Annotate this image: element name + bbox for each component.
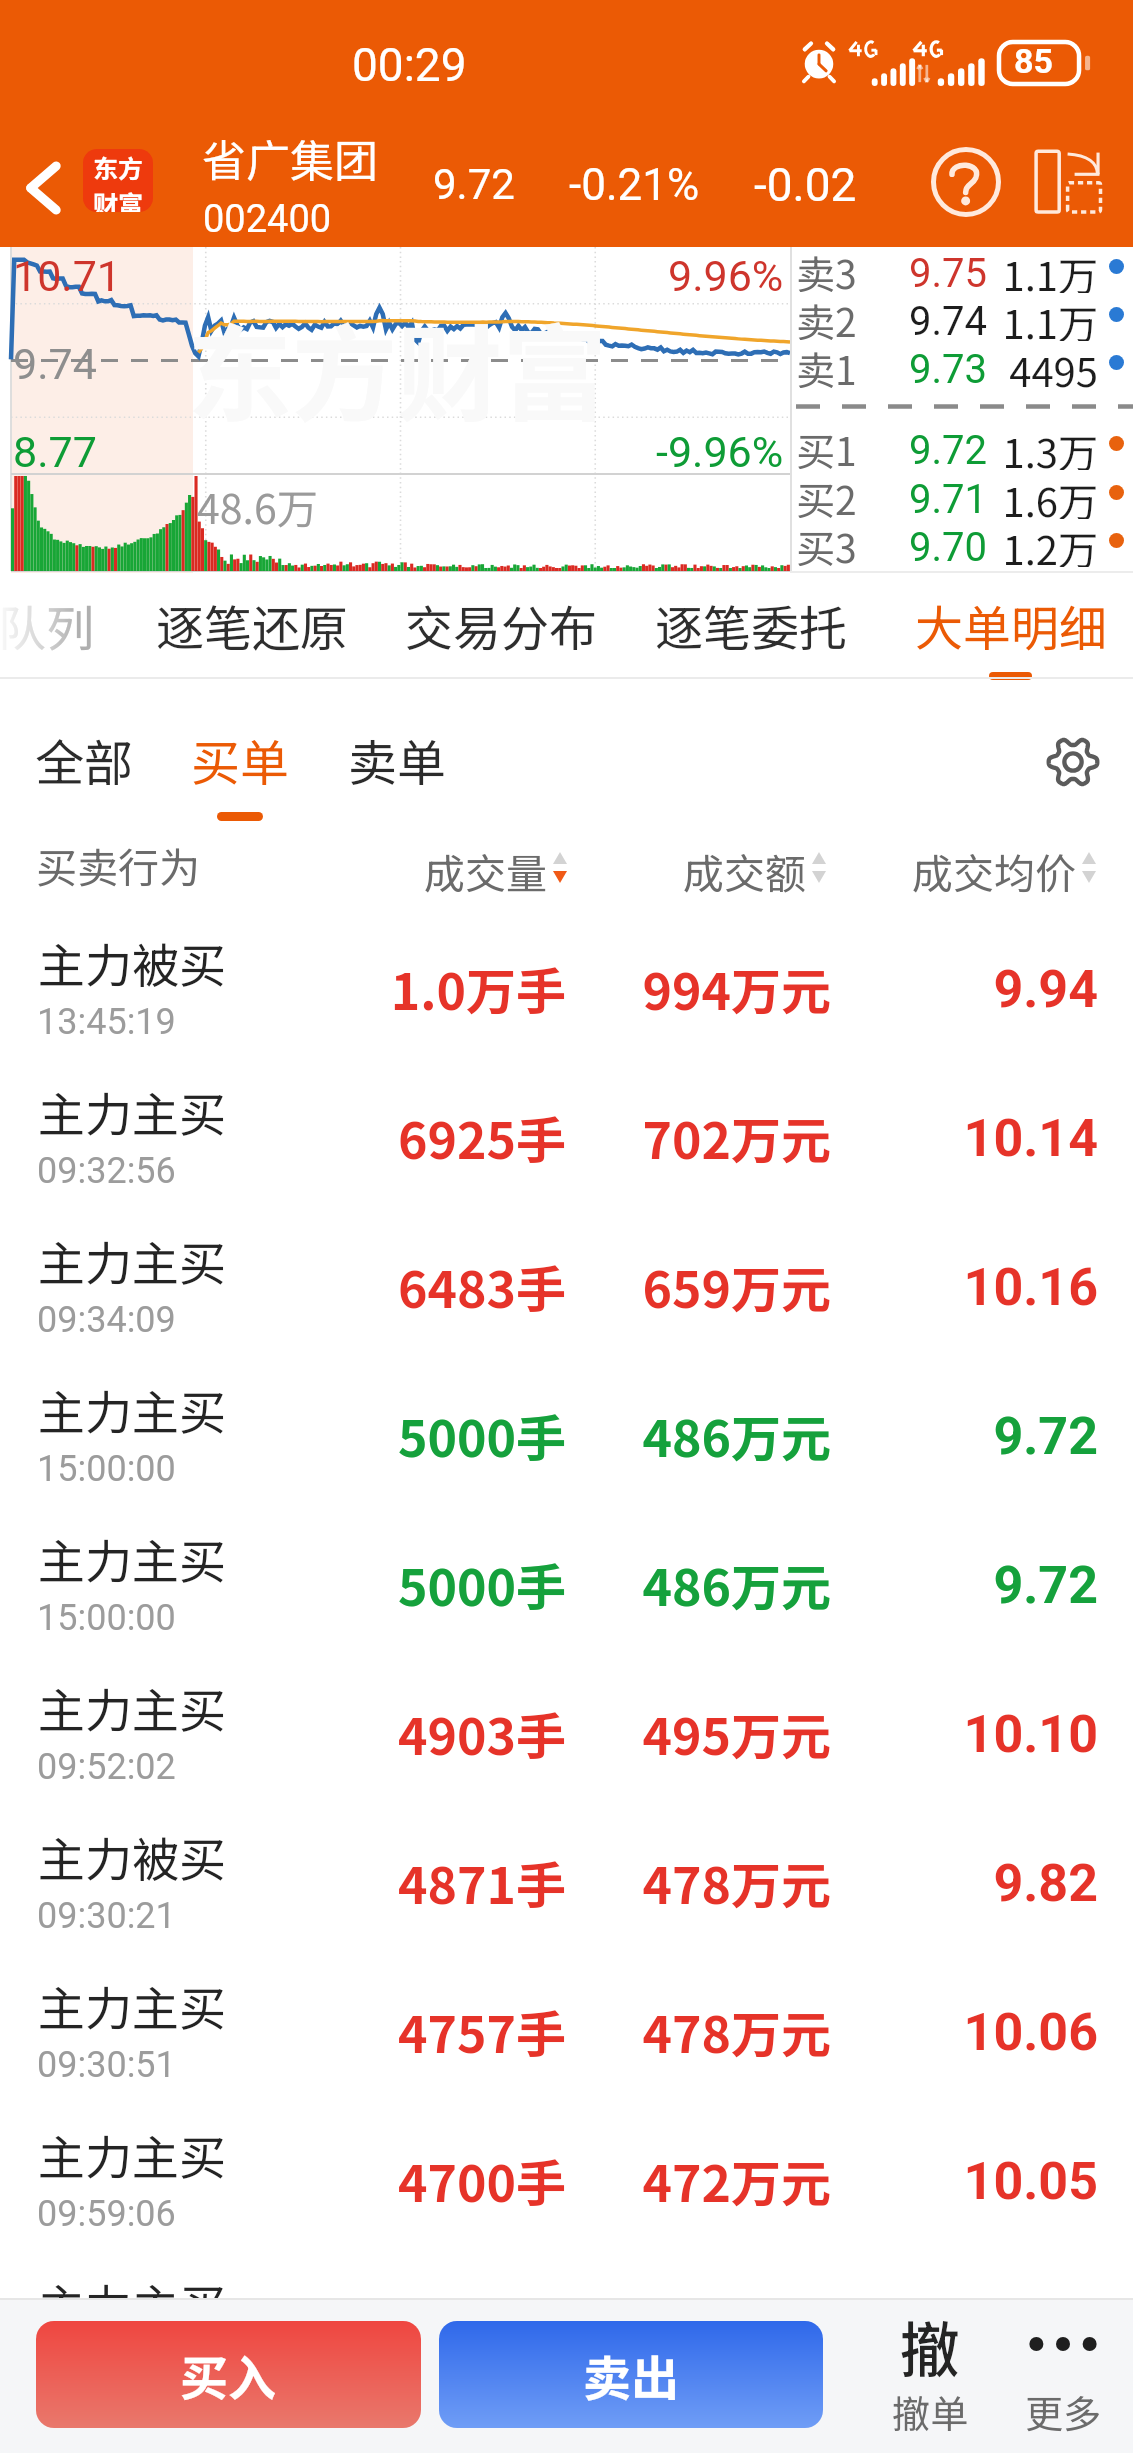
staticText: 主力主买 [38,2120,226,2188]
staticText: 队列 [0,590,95,660]
staticText: 486万元 [581,1548,831,1620]
staticText: 4903手 [316,1697,566,1769]
button[interactable]: 卖3 [792,243,1133,291]
button[interactable]: Help [922,138,1010,226]
button[interactable]: 买1 [792,420,1133,468]
staticText: 主力主买 [38,1971,226,2039]
staticText: 6925手 [316,1101,566,1173]
staticText: 9.72 [792,427,987,474]
button[interactable]: 队列 [0,573,141,679]
staticText: 702万元 [581,1101,831,1173]
button[interactable]: 主力主买 [0,1495,1133,1644]
staticText: 15:00:00 [37,1448,176,1490]
button[interactable]: 逐笔还原 [156,573,346,679]
button[interactable]: 卖出 [439,2321,823,2428]
staticText: 买卖行为 [36,835,200,894]
staticText: 1.1万 [792,245,1098,293]
button[interactable]: 买单 [170,679,310,795]
staticText: 4757手 [316,1995,566,2067]
staticText: 买1 [796,421,857,469]
staticText: 省广集团 [202,126,378,190]
staticText: 09:30:51 [37,2044,176,2086]
button[interactable]: 成交额 [683,840,826,900]
staticText: 1.0万手 [316,952,566,1024]
staticText: 10.06 [848,2002,1098,2063]
staticText: 472万元 [581,2144,831,2216]
staticText: 卖3 [796,244,857,292]
staticText: 478万元 [581,1995,831,2067]
staticText: 9.72 [848,1406,1098,1467]
button[interactable]: 全部 [14,679,154,795]
staticText: 6483手 [316,1250,566,1322]
button[interactable]: 卖2 [792,291,1133,339]
staticText: 8.77 [13,427,97,477]
button[interactable]: More options [991,2298,1133,2449]
staticText: 1.1万 [792,293,1098,341]
button[interactable]: Back [4,146,82,230]
staticText: 成交额 [683,841,806,900]
staticText: 买单 [191,724,290,795]
staticText: 买2 [796,470,857,518]
staticText: 13:45:19 [37,1001,176,1043]
staticText: 卖1 [796,340,857,388]
button[interactable]: 主力主买 [0,2091,1133,2240]
button[interactable]: 主力主买 [0,1197,1133,1346]
button[interactable]: Split screen [1025,138,1113,226]
staticText: 9.72 [433,160,515,209]
staticText: 4600手 [316,2293,566,2365]
button[interactable]: 大单明细 [915,573,1105,679]
button[interactable]: 成交量 [424,840,567,900]
button[interactable]: 卖1 [792,339,1133,387]
staticText: 9.71 [792,476,987,523]
staticText: -9.96% [656,427,784,477]
button[interactable]: 主力主买 [0,1644,1133,1793]
staticText: 9.72 [848,1555,1098,1616]
staticText: 逐笔委托 [655,590,845,660]
button[interactable]: 主力主买 [0,1942,1133,2091]
button[interactable]: Settings [1028,717,1118,807]
staticText: 465万元 [581,2293,831,2365]
staticText: 09:32:56 [37,1150,176,1192]
staticText: 48.6万 [197,476,318,535]
staticText: 撤单 [892,2384,969,2439]
staticText: -0.21% [569,159,700,211]
staticText: 9.74 [13,339,97,389]
staticText: 486万元 [581,1399,831,1471]
staticText: 659万元 [581,1250,831,1322]
button[interactable]: 主力主买 [0,1346,1133,1495]
staticText: 财富 [93,185,144,212]
staticText: 10.11 [848,2300,1098,2361]
staticText: 10.05 [848,2151,1098,2212]
staticText: 09:45:03 [37,2342,176,2384]
button[interactable]: 交易分布 [405,573,595,679]
staticText: 09:52:02 [37,1746,176,1788]
staticText: 5000手 [316,1548,566,1620]
button[interactable]: 买3 [792,517,1133,565]
staticText: 主力主买 [38,1077,226,1145]
staticText: 9.94 [848,959,1098,1020]
button[interactable]: 主力主买 [0,1048,1133,1197]
staticText: 4871手 [316,1846,566,1918]
staticText: 002400 [203,197,332,242]
button[interactable]: 逐笔委托 [655,573,845,679]
staticText: 东方财富 [187,291,608,443]
staticText: 00:29 [352,38,467,92]
staticText: 10.71 [13,251,122,301]
button[interactable]: 成交均价 [912,840,1096,900]
staticText: 10.16 [848,1257,1098,1318]
staticText: 卖出 [583,2340,680,2410]
button[interactable]: 买入 [36,2321,421,2428]
button[interactable]: 撤 [858,2298,1002,2449]
staticText: 逐笔还原 [156,590,346,660]
button[interactable]: 主力被买 [0,1793,1133,1942]
staticText: 15:00:00 [37,1597,176,1639]
staticText: 09:34:09 [37,1299,176,1341]
button[interactable]: 主力被买 [0,899,1133,1048]
button[interactable]: 卖单 [327,679,467,795]
staticText: 09:30:21 [37,1895,176,1937]
staticText: 9.70 [792,524,987,571]
button[interactable]: 买2 [792,469,1133,517]
staticText: 4495 [792,341,1098,389]
button[interactable]: 主力主买 [0,2240,1133,2389]
staticText: 09:59:06 [37,2193,176,2235]
